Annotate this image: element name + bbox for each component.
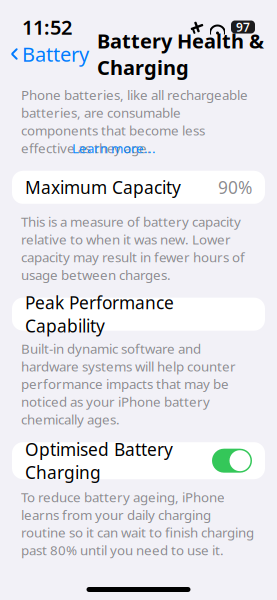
staticText: 11:52 [22,14,72,40]
staticText: Maximum Capacity [25,176,181,199]
staticText: Peak Performance Capability [25,291,174,337]
button[interactable]: Battery [10,37,89,71]
staticText: Battery Health & Charging [97,27,264,80]
staticText: To reduce battery ageing, iPhone learns … [21,488,254,559]
button[interactable]: Maximum Capacity [12,171,265,204]
staticText: 97 [236,19,250,35]
staticText: Optimised Battery Charging [25,438,173,484]
staticText: 90% [218,176,252,199]
button[interactable]: Peak Performance Capability [12,298,265,331]
staticText: Learn more... [72,139,156,157]
button[interactable]: Optimised Battery Charging [12,442,265,479]
staticText: This is a measure of battery capacity re… [21,213,245,284]
staticText: Phone batteries, like all rechargeable b… [21,86,248,157]
staticText: Battery [22,41,89,67]
staticText: Built-in dynamic software and hardware s… [21,340,236,428]
